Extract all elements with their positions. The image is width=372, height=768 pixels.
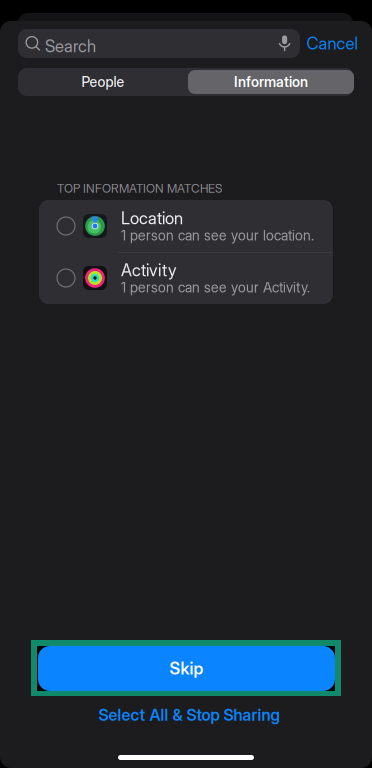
staticText: Activity [121, 260, 177, 280]
staticText: Skip [169, 658, 203, 679]
button[interactable]: Information [188, 70, 354, 94]
button[interactable]: Location [39, 200, 333, 252]
button[interactable]: Select All & Stop Sharing [74, 704, 304, 726]
button[interactable]: People [20, 70, 186, 94]
staticText: 1 person can see your Activity. [121, 279, 310, 296]
staticText: People [81, 73, 124, 90]
staticText: Cancel [306, 33, 357, 54]
staticText: Search [45, 36, 96, 56]
button[interactable]: Activity [39, 252, 333, 304]
staticText: Select All & Stop Sharing [98, 705, 279, 725]
button[interactable]: Cancel [304, 29, 360, 58]
staticText: TOP INFORMATION MATCHES [57, 181, 222, 195]
staticText: 1 person can see your location. [121, 227, 314, 244]
staticText: Information [234, 73, 308, 90]
staticText: Location [121, 208, 183, 228]
button[interactable]: Search [18, 29, 300, 58]
button[interactable]: Skip [31, 640, 341, 696]
